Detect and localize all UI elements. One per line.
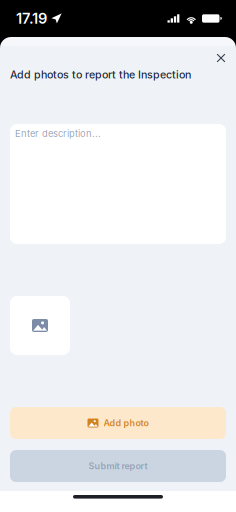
staticText: Enter description... (15, 128, 101, 139)
button[interactable]: Close (209, 46, 233, 70)
button[interactable]: Add photo (10, 296, 70, 355)
button[interactable]: Add photo (10, 407, 226, 439)
staticText: Submit report (88, 461, 147, 471)
button[interactable]: Submit report (10, 450, 226, 482)
staticText: Add photos to report the Inspection (10, 68, 191, 81)
staticText: Add photo (103, 418, 148, 428)
staticText: 17.19 (16, 10, 47, 27)
